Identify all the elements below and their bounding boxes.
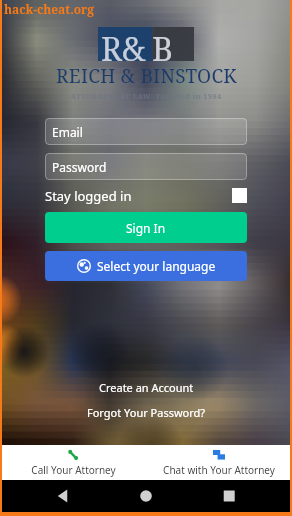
button[interactable]: Select your language [45, 251, 247, 281]
button[interactable]: Forgot Your Password? [81, 403, 212, 422]
staticText: Password [52, 159, 107, 175]
button[interactable]: Create an Account [93, 378, 200, 397]
staticText: REICH & BINSTOCK [56, 63, 237, 89]
staticText: Email [52, 124, 83, 140]
staticText: Forgot Your Password? [87, 405, 206, 420]
staticText: ATTORNEYS AT LAW Founded in 1984 [71, 92, 222, 102]
staticText: Sign In [126, 220, 166, 236]
staticText: Create an Account [99, 380, 194, 395]
button[interactable]: Call Your Attorney [0, 445, 146, 480]
staticText: Chat with Your Attorney [163, 463, 275, 477]
staticText: R& [101, 27, 146, 61]
staticText: Select your language [97, 258, 216, 274]
button[interactable]: Chat with Your Attorney [146, 445, 292, 480]
staticText: Call Your Attorney [31, 463, 116, 477]
button[interactable]: Sign In [45, 212, 247, 243]
button[interactable]: Password [45, 153, 247, 180]
staticText: B [152, 27, 173, 61]
staticText: Stay logged in [45, 187, 132, 204]
button[interactable]: Email [45, 118, 247, 145]
staticText: hack-cheat.org [4, 1, 95, 17]
